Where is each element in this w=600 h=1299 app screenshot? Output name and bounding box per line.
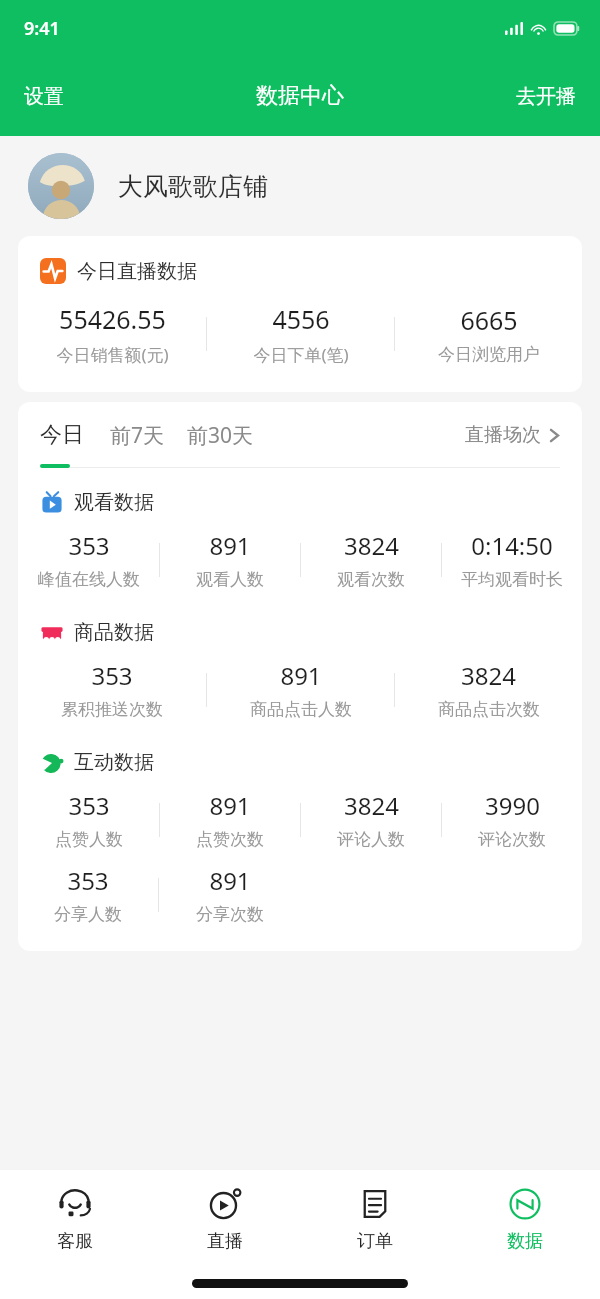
button[interactable]: 直播场次	[465, 423, 560, 447]
staticText: 3990	[485, 789, 540, 822]
staticText: 商品点击次数	[438, 699, 540, 720]
button[interactable]: 前30天	[187, 421, 254, 450]
button[interactable]: 891	[160, 789, 300, 850]
button[interactable]: 大风歌歌店铺	[0, 136, 600, 236]
staticText: 今日销售额(元)	[56, 343, 169, 366]
staticText: 891	[280, 659, 322, 692]
button[interactable]: 4556	[207, 302, 394, 366]
staticText: 3824	[461, 659, 516, 692]
button[interactable]: 353	[18, 864, 158, 925]
button[interactable]: 353	[18, 659, 206, 720]
staticText: 0:14:50	[471, 529, 553, 562]
staticText: 直播	[207, 1230, 243, 1253]
staticText: 891	[209, 864, 251, 897]
staticText: 观看次数	[337, 569, 405, 590]
staticText: 直播场次	[465, 423, 541, 447]
button[interactable]: 3824	[301, 789, 441, 850]
staticText: 互动数据	[74, 750, 154, 775]
staticText: 今日下单(笔)	[253, 343, 349, 366]
staticText: 353	[68, 529, 110, 562]
button[interactable]: 55426.55	[18, 302, 206, 366]
staticText: 数据中心	[256, 82, 344, 110]
staticText: 353	[68, 789, 110, 822]
staticText: 累积推送次数	[61, 699, 163, 720]
staticText: 55426.55	[59, 302, 166, 336]
staticText: 数据	[507, 1230, 543, 1253]
button[interactable]: 3990	[442, 789, 582, 850]
button[interactable]: 前7天	[110, 421, 165, 450]
staticText: 评论次数	[478, 829, 546, 850]
button[interactable]: 直播	[150, 1170, 300, 1268]
staticText: 大风歌歌店铺	[118, 171, 268, 202]
staticText: 891	[209, 789, 251, 822]
staticText: 客服	[57, 1230, 93, 1253]
button[interactable]: 0:14:50	[442, 529, 582, 590]
staticText: 353	[67, 864, 109, 897]
staticText: 今日	[40, 421, 84, 449]
button[interactable]: 891	[159, 864, 300, 925]
button[interactable]: 订单	[300, 1170, 450, 1268]
staticText: 峰值在线人数	[38, 569, 140, 590]
staticText: 评论人数	[337, 829, 405, 850]
staticText: 点赞人数	[55, 829, 123, 850]
staticText: 分享次数	[196, 904, 264, 925]
staticText: 观看人数	[196, 569, 264, 590]
staticText: 4556	[272, 302, 330, 336]
button[interactable]: 891	[207, 659, 394, 720]
staticText: 9:41	[24, 16, 60, 41]
staticText: 3824	[344, 529, 399, 562]
staticText: 6665	[460, 303, 518, 337]
button[interactable]: 891	[160, 529, 300, 590]
staticText: 订单	[357, 1230, 393, 1253]
staticText: 商品点击人数	[250, 699, 352, 720]
staticText: 353	[91, 659, 133, 692]
staticText: 平均观看时长	[461, 569, 563, 590]
staticText: 3824	[344, 789, 399, 822]
staticText: 设置	[24, 84, 64, 109]
button[interactable]: 客服	[0, 1170, 150, 1268]
button[interactable]: 设置	[0, 72, 88, 121]
staticText: 分享人数	[54, 904, 122, 925]
button[interactable]: 今日	[40, 421, 84, 449]
button[interactable]: 3824	[301, 529, 441, 590]
staticText: 前30天	[187, 421, 254, 450]
staticText: 去开播	[516, 84, 576, 109]
button[interactable]: 6665	[395, 303, 582, 365]
staticText: 观看数据	[74, 490, 154, 515]
button[interactable]: 数据	[450, 1170, 600, 1268]
button[interactable]: 353	[18, 789, 159, 850]
button[interactable]: 3824	[395, 659, 582, 720]
button[interactable]: 去开播	[492, 72, 600, 121]
button[interactable]: 353	[18, 529, 159, 590]
staticText: 今日浏览用户	[438, 344, 540, 365]
staticText: 前7天	[110, 421, 165, 450]
staticText: 点赞次数	[196, 829, 264, 850]
staticText: 商品数据	[74, 620, 154, 645]
staticText: 891	[209, 529, 251, 562]
staticText: 今日直播数据	[77, 259, 197, 284]
